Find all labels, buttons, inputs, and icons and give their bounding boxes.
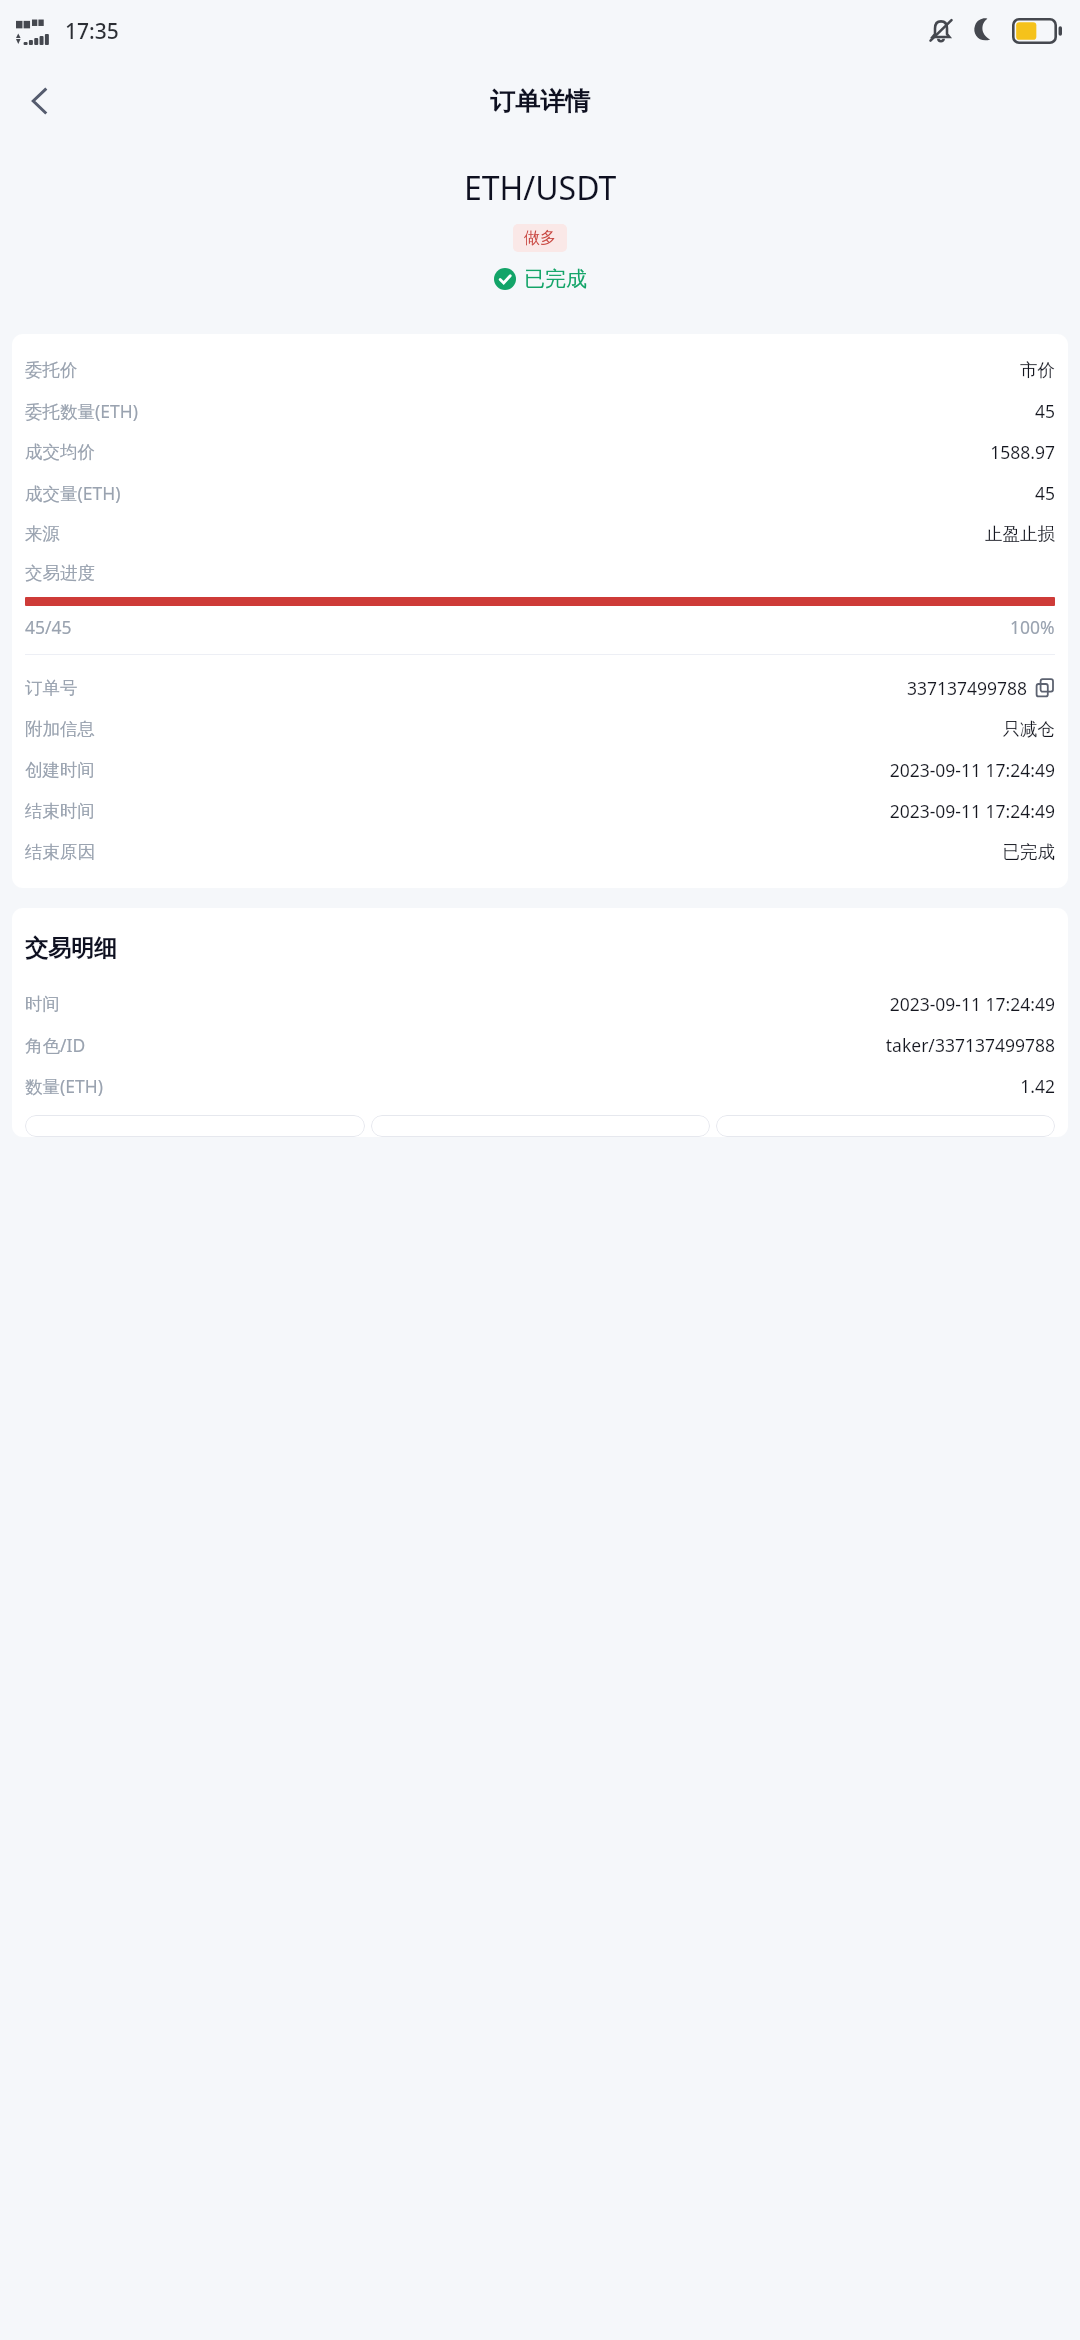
staticText: 创建时间 bbox=[25, 759, 95, 781]
staticText: 1.42 bbox=[1020, 1074, 1055, 1098]
staticText: 委托数量(ETH) bbox=[25, 399, 138, 423]
staticText: 已完成 bbox=[1002, 841, 1055, 863]
staticText: 来源 bbox=[25, 523, 60, 545]
other: Silent mode bbox=[926, 16, 956, 46]
staticText: 只减仓 bbox=[1002, 718, 1055, 740]
button[interactable]: Copy order number bbox=[1035, 678, 1055, 698]
staticText: 100% bbox=[1010, 615, 1055, 639]
staticText: taker/337137499788 bbox=[885, 1033, 1055, 1057]
staticText: 45/45 bbox=[25, 615, 72, 639]
staticText: ETH/USDT bbox=[464, 166, 617, 210]
button[interactable]: Back bbox=[8, 69, 72, 133]
staticText: 2023-09-11 17:24:49 bbox=[889, 799, 1055, 823]
button[interactable] bbox=[716, 1115, 1055, 1137]
staticText: 附加信息 bbox=[25, 718, 95, 740]
button[interactable]: 做多 bbox=[513, 224, 567, 252]
staticText: 角色/ID bbox=[25, 1033, 86, 1057]
button[interactable] bbox=[371, 1115, 710, 1137]
staticText: 结束时间 bbox=[25, 800, 95, 822]
staticText: 交易明细 bbox=[25, 934, 117, 963]
staticText: 337137499788 bbox=[906, 676, 1027, 700]
staticText: 17:35 bbox=[65, 17, 119, 46]
staticText: 交易进度 bbox=[25, 562, 95, 584]
staticText: 成交均价 bbox=[25, 441, 95, 463]
other: Do not disturb bbox=[970, 17, 998, 45]
staticText: 委托价 bbox=[25, 359, 78, 381]
staticText: 45 bbox=[1034, 399, 1055, 423]
staticText: 市价 bbox=[1020, 359, 1055, 381]
staticText: 2023-09-11 17:24:49 bbox=[889, 992, 1055, 1016]
staticText: 数量(ETH) bbox=[25, 1074, 103, 1098]
staticText: 订单号 bbox=[25, 677, 78, 699]
staticText: 时间 bbox=[25, 993, 60, 1015]
staticText: 2023-09-11 17:24:49 bbox=[889, 758, 1055, 782]
staticText: 1588.97 bbox=[990, 440, 1055, 464]
staticText: 止盈止损 bbox=[985, 523, 1055, 545]
staticText: 做多 bbox=[524, 228, 556, 248]
staticText: 成交量(ETH) bbox=[25, 481, 121, 505]
staticText: 已完成 bbox=[524, 266, 587, 292]
button[interactable] bbox=[25, 1115, 365, 1137]
staticText: 45 bbox=[1034, 481, 1055, 505]
staticText: 结束原因 bbox=[25, 841, 95, 863]
staticText: 订单详情 bbox=[490, 86, 590, 117]
